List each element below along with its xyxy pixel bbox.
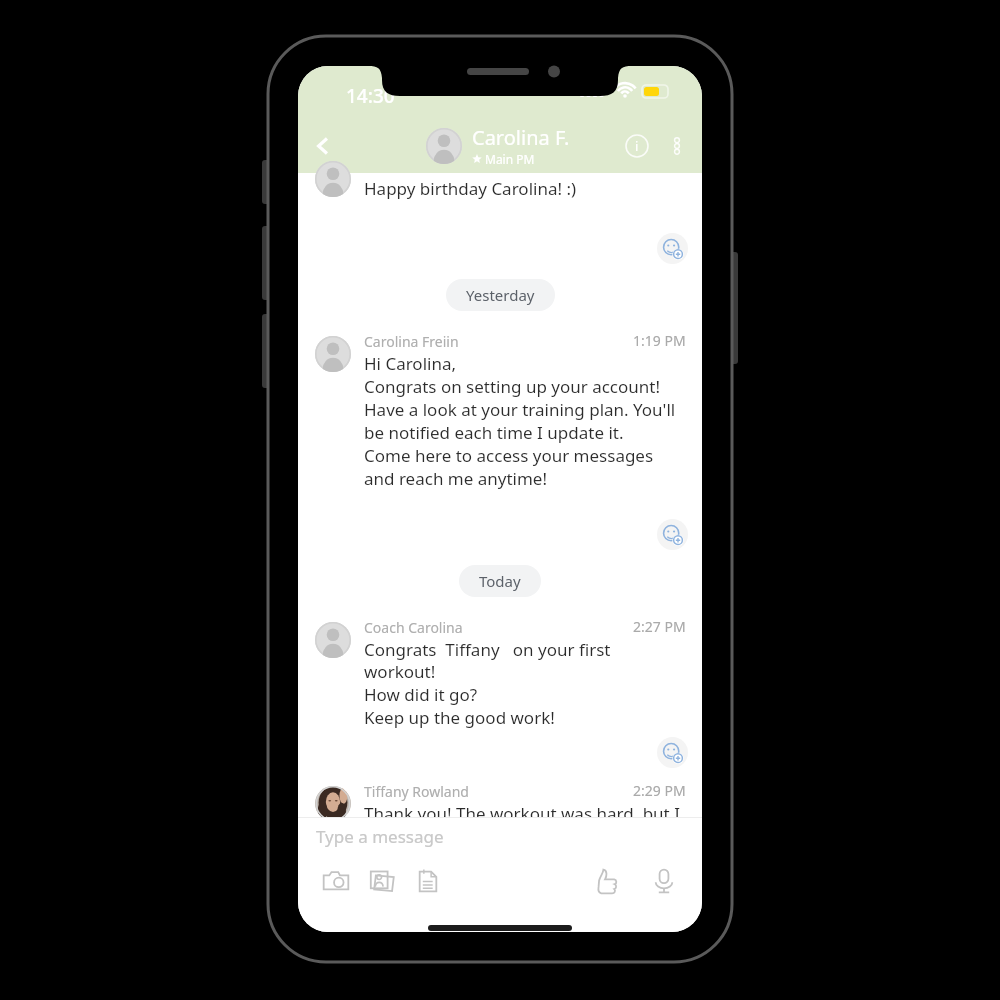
staticText: Main PM xyxy=(485,151,535,167)
staticText: Congrats on setting up your account! xyxy=(364,375,661,398)
staticText: 2:29 PM xyxy=(633,781,686,800)
button[interactable]: Add reaction xyxy=(657,519,688,550)
staticText: Have a look at your training plan. You'l… xyxy=(364,398,676,421)
staticText: Yesterday xyxy=(466,285,535,305)
staticText: Type a message xyxy=(316,825,444,848)
button[interactable]: Add reaction xyxy=(657,737,688,768)
staticText: How did it go? xyxy=(364,683,478,706)
staticText: 1:19 PM xyxy=(633,331,686,350)
button[interactable]: Like xyxy=(582,859,626,903)
button[interactable]: More options xyxy=(660,129,694,163)
button[interactable]: Coach Carolina xyxy=(315,618,686,729)
staticText: Carolina F. xyxy=(472,124,570,151)
staticText: Keep up the good work! xyxy=(364,706,555,729)
button[interactable]: Attach document xyxy=(406,859,450,903)
staticText: 14:30 xyxy=(346,83,395,109)
staticText: Today xyxy=(479,571,521,591)
staticText: 2:27 PM xyxy=(633,617,686,636)
staticText: be notified each time I update it. xyxy=(364,421,624,444)
button[interactable]: Happy birthday Carolina! :) xyxy=(315,175,702,211)
staticText: i xyxy=(635,137,639,155)
button[interactable]: Yesterday xyxy=(446,279,555,311)
staticText: Tiffany Rowland xyxy=(364,782,469,801)
button[interactable]: Type a message xyxy=(298,818,702,852)
staticText: Come here to access your messages xyxy=(364,444,654,467)
staticText: Carolina Freiin xyxy=(364,332,459,351)
staticText: and reach me anytime! xyxy=(364,467,548,490)
staticText: Hi Carolina, xyxy=(364,352,457,375)
button[interactable]: Back xyxy=(298,118,348,173)
staticText: Coach Carolina xyxy=(364,618,463,637)
button[interactable]: Camera xyxy=(314,859,358,903)
button[interactable]: Carolina Freiin xyxy=(315,332,686,490)
staticText: Congrats Tiffany on your first workout! xyxy=(364,638,686,683)
staticText: Thank you! The workout was hard, but I xyxy=(364,802,680,817)
button[interactable]: Voice message xyxy=(642,859,686,903)
button[interactable]: Info xyxy=(614,123,660,169)
button[interactable]: Photos xyxy=(360,859,404,903)
button[interactable]: Tiffany Rowland xyxy=(315,782,686,817)
staticText: Happy birthday Carolina! :) xyxy=(364,177,577,200)
button[interactable]: Add reaction xyxy=(657,233,688,264)
button[interactable]: Today xyxy=(459,565,541,597)
button[interactable]: Carolina F. xyxy=(426,124,570,167)
